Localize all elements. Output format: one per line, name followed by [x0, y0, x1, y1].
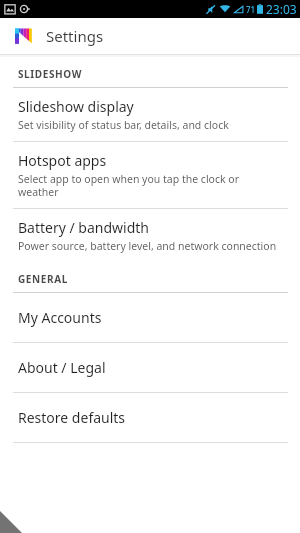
staticText: Slideshow display [18, 97, 134, 116]
staticText: Restore defaults [18, 408, 126, 427]
button[interactable]: Restore defaults [0, 393, 300, 442]
button[interactable]: Battery / bandwidth [0, 209, 300, 262]
button[interactable]: About / Legal [0, 343, 300, 392]
staticText: Set visibility of status bar, details, a… [18, 118, 229, 132]
staticText: Hotspot apps [18, 151, 107, 170]
other: Resize handle [0, 511, 22, 533]
staticText: GENERAL [18, 272, 68, 286]
staticText: About / Legal [18, 358, 106, 377]
button[interactable]: Hotspot apps [0, 142, 300, 208]
staticText: Select app to open when you tap the cloc… [18, 172, 278, 199]
staticText: Power source, battery level, and network… [18, 239, 277, 253]
staticText: SLIDESHOW [18, 67, 82, 81]
staticText: 71 [246, 4, 256, 15]
staticText: 23:03 [266, 1, 297, 17]
staticText: My Accounts [18, 308, 102, 327]
button[interactable]: Slideshow display [0, 88, 300, 141]
button[interactable]: My Accounts [0, 293, 300, 342]
staticText: Battery / bandwidth [18, 218, 150, 237]
staticText: Settings [46, 26, 104, 46]
